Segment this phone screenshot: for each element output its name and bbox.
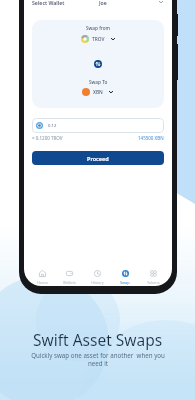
staticText: TROV — [92, 36, 105, 43]
staticText: Quickly swap one asset for another when … — [31, 351, 165, 367]
staticText: Proceed — [87, 155, 109, 162]
button[interactable]: 0.12 — [32, 118, 164, 133]
staticText: Home — [37, 280, 48, 285]
button[interactable]: Tokens — [139, 270, 167, 285]
staticText: Select Wallet — [32, 0, 65, 6]
staticText: Swap To — [89, 79, 108, 85]
staticText: Tokens — [147, 280, 160, 285]
staticText: = 0.1200 TROV — [32, 135, 63, 141]
staticText: 145500 XBN — [138, 135, 164, 141]
button[interactable]: TROV — [81, 35, 116, 43]
staticText: Joe — [99, 0, 107, 6]
button[interactable]: Proceed — [32, 151, 164, 165]
button[interactable]: History — [83, 270, 111, 285]
staticText: Swap from — [86, 25, 111, 31]
button[interactable]: Swap direction — [94, 60, 102, 68]
button[interactable]: Home — [29, 270, 56, 285]
button[interactable]: XBN — [82, 88, 114, 96]
staticText: Swift Asset Swaps — [33, 329, 163, 350]
staticText: XBN — [93, 89, 103, 96]
button[interactable]: Wallets — [56, 270, 83, 285]
staticText: Swap — [120, 280, 130, 285]
staticText: History — [91, 280, 104, 285]
button[interactable]: Swap — [111, 270, 139, 285]
staticText: Wallets — [63, 280, 76, 285]
staticText: 0.12 — [48, 123, 57, 129]
